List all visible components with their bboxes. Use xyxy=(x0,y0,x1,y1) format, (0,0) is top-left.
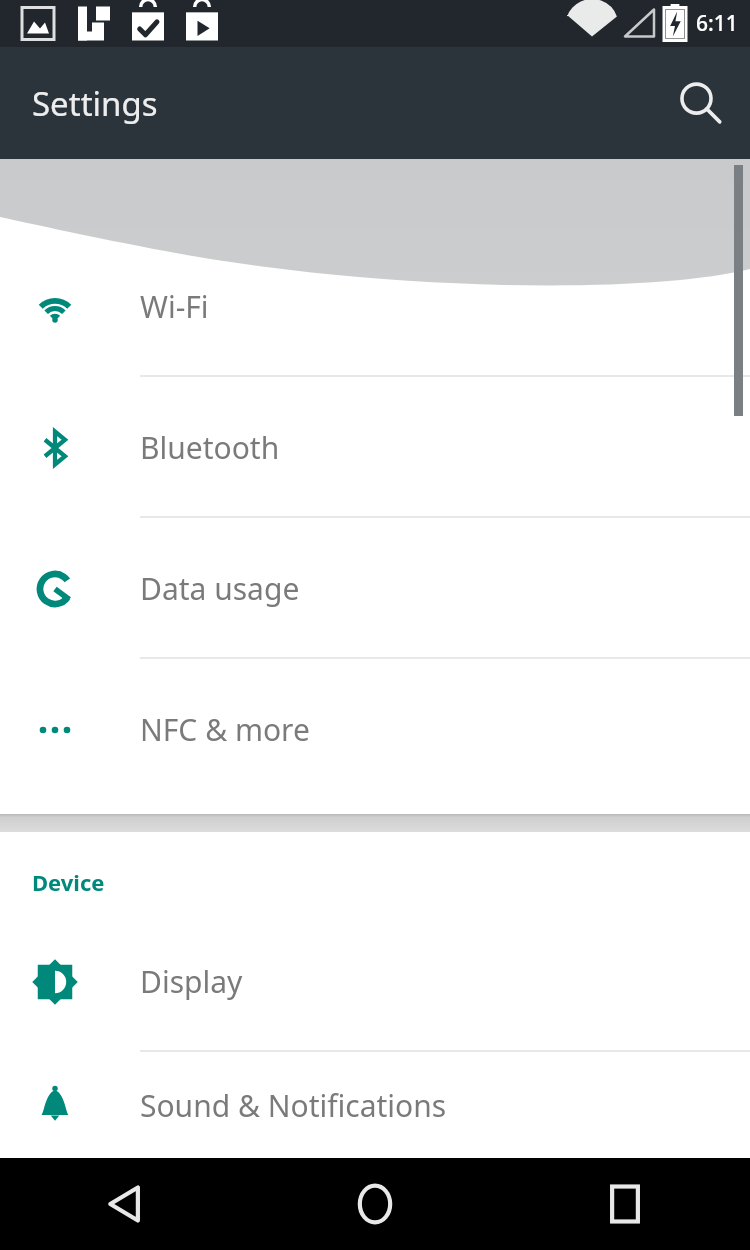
button[interactable]: Home xyxy=(250,1158,500,1250)
staticText: Settings xyxy=(32,81,158,126)
staticText: Data usage xyxy=(140,568,300,609)
staticText: NFC & more xyxy=(140,709,310,750)
button[interactable]: Recent apps xyxy=(500,1158,750,1250)
button[interactable]: NFC & more xyxy=(0,659,750,800)
staticText: 6:11 xyxy=(696,9,738,38)
staticText: Sound & Notifications xyxy=(140,1085,447,1126)
staticText: Wi-Fi xyxy=(140,286,209,327)
button[interactable]: Search xyxy=(664,67,736,139)
button[interactable]: Wi-Fi xyxy=(0,236,750,377)
button[interactable]: Back xyxy=(0,1158,250,1250)
staticText: Display xyxy=(140,961,243,1002)
button[interactable]: Bluetooth xyxy=(0,377,750,518)
staticText: Bluetooth xyxy=(140,427,280,468)
button[interactable]: Display xyxy=(0,911,750,1052)
button[interactable]: Data usage xyxy=(0,518,750,659)
button[interactable]: Sound & Notifications xyxy=(0,1052,750,1158)
staticText: Device xyxy=(32,867,105,897)
